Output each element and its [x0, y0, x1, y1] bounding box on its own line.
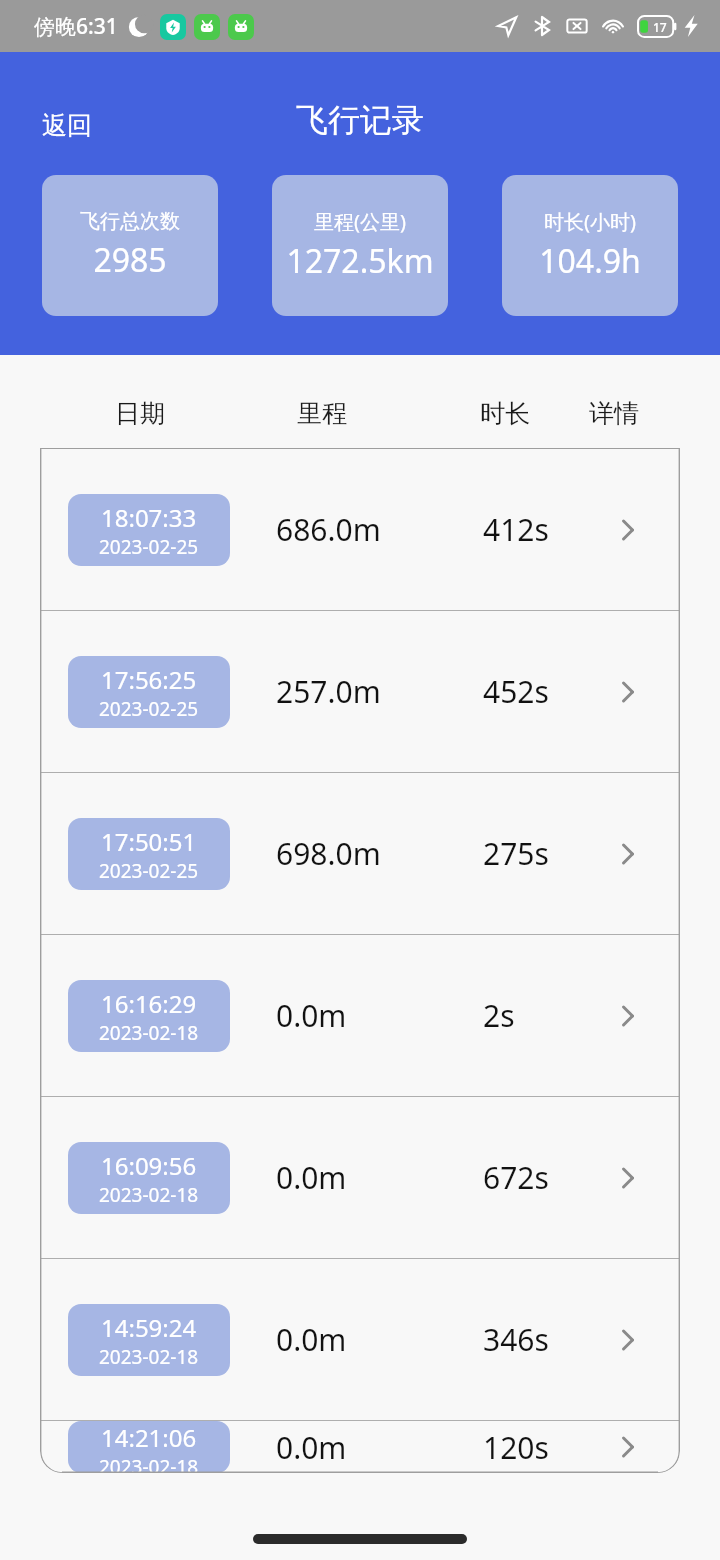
staticText: 275s: [483, 833, 549, 874]
staticText: 104.9h: [539, 239, 641, 283]
staticText: 1272.5km: [286, 239, 434, 283]
button[interactable]: 16:16:29: [40, 935, 680, 1096]
staticText: 里程(公里): [314, 208, 406, 235]
staticText: 0.0m: [276, 1427, 347, 1468]
staticText: 2023-02-18: [99, 1182, 199, 1208]
button[interactable]: 详情: [602, 666, 654, 718]
button[interactable]: 17:50:51: [40, 773, 680, 934]
staticText: 412s: [483, 509, 549, 550]
button[interactable]: 返回: [28, 104, 106, 147]
staticText: 傍晚6:31: [34, 12, 118, 41]
staticText: 2023-02-18: [99, 1454, 199, 1473]
staticText: 时长(小时): [544, 208, 636, 235]
staticText: 257.0m: [276, 671, 381, 712]
staticText: 698.0m: [276, 833, 381, 874]
button[interactable]: 里程(公里): [272, 175, 448, 316]
staticText: 飞行总次数: [80, 209, 180, 234]
button[interactable]: 详情: [602, 1152, 654, 1204]
staticText: 返回: [42, 110, 92, 141]
staticText: 18:07:33: [101, 501, 197, 534]
button[interactable]: 详情: [602, 828, 654, 880]
staticText: 0.0m: [276, 1157, 347, 1198]
button[interactable]: 时长(小时): [502, 175, 678, 316]
staticText: 2023-02-25: [99, 696, 199, 722]
button[interactable]: 17:56:25: [40, 611, 680, 772]
button[interactable]: 14:21:06: [40, 1421, 680, 1473]
staticText: 2023-02-25: [99, 534, 199, 560]
staticText: 日期: [115, 398, 165, 429]
button[interactable]: 18:07:33: [40, 449, 680, 610]
staticText: 0.0m: [276, 995, 347, 1036]
staticText: 16:09:56: [101, 1149, 197, 1182]
button[interactable]: 16:09:56: [40, 1097, 680, 1258]
staticText: 672s: [483, 1157, 549, 1198]
button[interactable]: 详情: [602, 1421, 654, 1473]
staticText: 17: [653, 19, 667, 35]
button[interactable]: 详情: [602, 990, 654, 1042]
staticText: 14:59:24: [101, 1311, 197, 1344]
staticText: 14:21:06: [101, 1421, 197, 1454]
staticText: 0.0m: [276, 1319, 347, 1360]
staticText: 16:16:29: [101, 987, 197, 1020]
button[interactable]: 飞行总次数: [42, 175, 218, 316]
staticText: 2023-02-18: [99, 1020, 199, 1046]
staticText: 详情: [589, 398, 639, 429]
staticText: 时长: [480, 398, 530, 429]
staticText: 17:56:25: [101, 663, 197, 696]
staticText: 2023-02-25: [99, 858, 199, 884]
staticText: 17:50:51: [101, 825, 197, 858]
button[interactable]: 详情: [602, 504, 654, 556]
staticText: 2s: [483, 995, 515, 1036]
button[interactable]: 详情: [602, 1314, 654, 1366]
staticText: 686.0m: [276, 509, 381, 550]
staticText: 里程: [297, 398, 347, 429]
staticText: 2985: [93, 238, 167, 282]
staticText: 452s: [483, 671, 549, 712]
staticText: 飞行记录: [296, 100, 424, 140]
button[interactable]: 14:59:24: [40, 1259, 680, 1420]
staticText: 346s: [483, 1319, 549, 1360]
staticText: 2023-02-18: [99, 1344, 199, 1370]
staticText: 120s: [483, 1427, 549, 1468]
